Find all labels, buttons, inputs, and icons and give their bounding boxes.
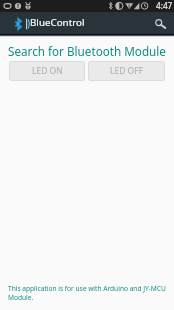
staticText: LED OFF bbox=[110, 65, 144, 77]
staticText: This application is for use with Arduino… bbox=[8, 284, 168, 302]
button[interactable]: LED OFF bbox=[88, 61, 165, 81]
button[interactable]: Search bbox=[152, 12, 170, 34]
staticText: LED ON bbox=[32, 65, 63, 77]
staticText: BlueControl bbox=[30, 16, 85, 29]
staticText: 4:47 bbox=[156, 0, 173, 11]
button[interactable]: LED ON bbox=[9, 61, 85, 81]
staticText: Search for Bluetooth Module bbox=[8, 43, 166, 59]
